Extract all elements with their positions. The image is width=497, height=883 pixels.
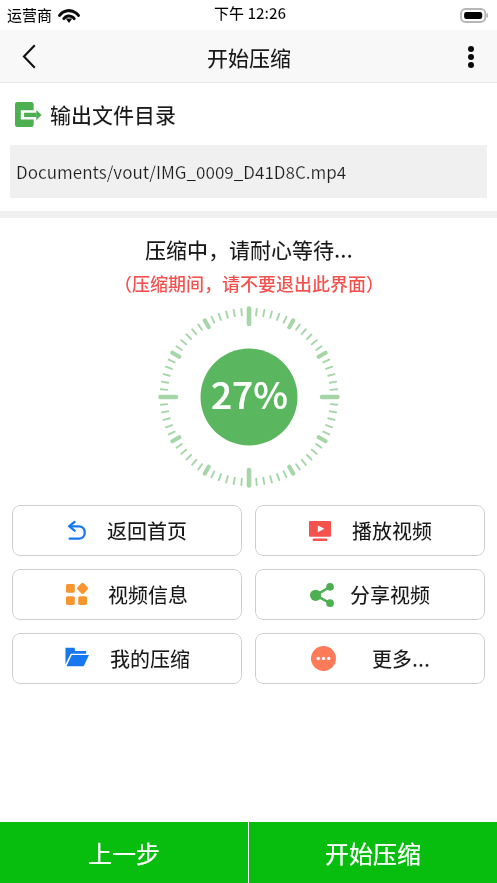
staticText: 分享视频 — [350, 580, 430, 609]
button[interactable]: 开始压缩 — [249, 822, 497, 883]
button[interactable]: 播放视频 — [255, 505, 485, 556]
button[interactable]: 返回首页 — [12, 505, 242, 556]
button[interactable]: 上一步 — [0, 822, 248, 883]
button[interactable]: 返回 — [0, 30, 56, 83]
staticText: 我的压缩 — [110, 644, 190, 673]
staticText: 播放视频 — [352, 516, 432, 545]
staticText: 视频信息 — [108, 580, 188, 609]
staticText: 开始压缩 — [325, 835, 421, 870]
staticText: 返回首页 — [107, 516, 187, 545]
staticText: Documents/vout/IMG_0009_D41D8C.mp4 — [16, 159, 347, 184]
staticText: 压缩中，请耐心等待... — [145, 234, 353, 264]
button[interactable]: 视频信息 — [12, 569, 242, 620]
staticText: 更多... — [372, 644, 430, 673]
staticText: 27% — [211, 366, 288, 420]
button[interactable]: 分享视频 — [255, 569, 485, 620]
button[interactable]: 我的压缩 — [12, 633, 242, 684]
button[interactable]: 更多... — [255, 633, 485, 684]
staticText: 上一步 — [88, 835, 160, 870]
staticText: （压缩期间，请不要退出此界面） — [114, 270, 384, 296]
staticText: 下午 12:26 — [214, 2, 287, 24]
button[interactable]: 更多选项 — [441, 30, 497, 83]
staticText: 运营商 — [7, 4, 53, 26]
staticText: 开始压缩 — [207, 42, 291, 72]
staticText: 输出文件目录 — [50, 99, 176, 129]
